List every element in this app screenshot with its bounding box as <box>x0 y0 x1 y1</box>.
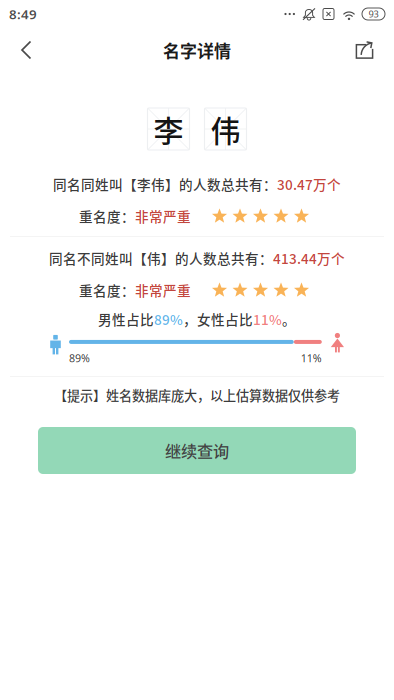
staticText: 【提示】姓名数据库庞大，以上估算数据仅供参考 <box>54 385 340 404</box>
staticText: 李 <box>153 107 183 151</box>
staticText: 非常严重 <box>135 206 191 226</box>
staticText: 重名度： <box>79 280 135 300</box>
staticText: 30.47万个 <box>277 174 341 194</box>
staticText: 名字详情 <box>163 38 231 62</box>
button[interactable]: Share <box>343 28 386 71</box>
staticText: 继续查询 <box>165 439 229 462</box>
staticText: 89% <box>154 309 183 329</box>
staticText: 男性占比 <box>98 309 154 329</box>
staticText: 413.44万个 <box>273 248 345 268</box>
staticText: 。 <box>282 309 296 329</box>
staticText: 89% <box>69 351 90 365</box>
staticText: 11% <box>301 351 322 365</box>
staticText: 同名同姓叫【李伟】的人数总共有： <box>53 174 277 194</box>
button[interactable]: Back <box>8 28 45 72</box>
staticText: ，女性占比 <box>183 309 253 329</box>
staticText: 重名度： <box>79 206 135 226</box>
staticText: 非常严重 <box>135 280 191 300</box>
staticText: 伟 <box>210 107 240 151</box>
staticText: 同名不同姓叫【伟】的人数总共有： <box>49 248 273 268</box>
staticText: 11% <box>253 309 282 329</box>
staticText: 8:49 <box>9 5 37 23</box>
staticText: 93 <box>368 8 378 20</box>
button[interactable]: 继续查询 <box>38 427 356 474</box>
